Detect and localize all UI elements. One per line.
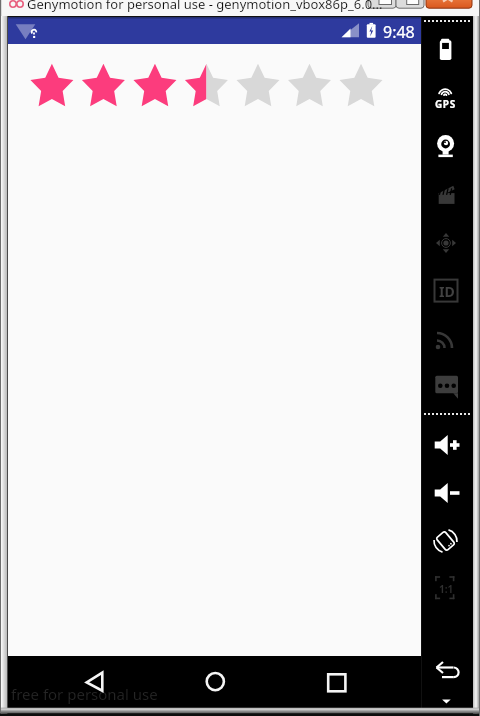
button[interactable]: Back: [58, 659, 126, 705]
button[interactable]: Home: [189, 659, 257, 705]
staticText: ID: [439, 282, 455, 301]
staticText: GPS: [435, 97, 456, 111]
staticText: Genymotion for personal use - genymotion…: [27, 0, 383, 13]
staticText: 1:1: [439, 582, 454, 596]
staticText: 9:48: [383, 21, 415, 43]
staticText: free for personal use: [11, 684, 158, 704]
button[interactable]: Recent apps: [310, 659, 378, 705]
